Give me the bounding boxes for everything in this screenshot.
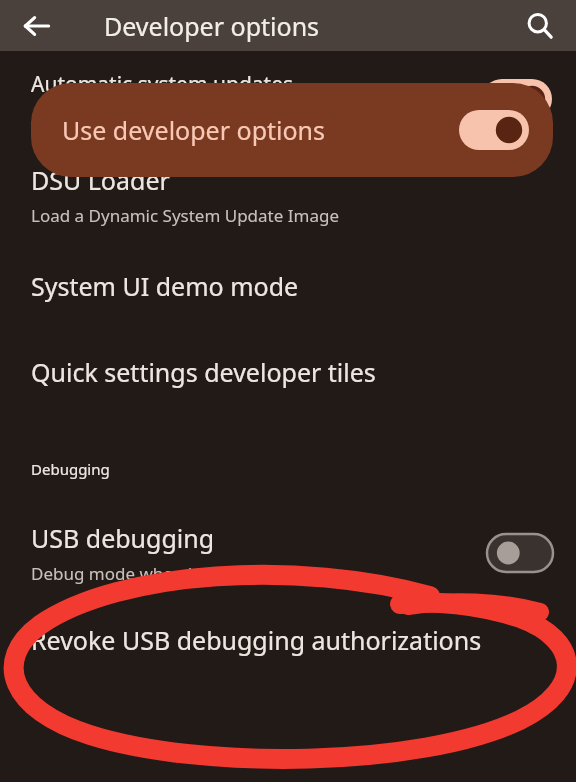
button[interactable]: Revoke USB debugging authorizations [0, 615, 576, 665]
staticText: Developer options [104, 9, 320, 43]
staticText: Apply updates when device restarts [31, 107, 298, 129]
button[interactable]: Automatic system updates [0, 51, 576, 147]
staticText: Quick settings developer tiles [31, 355, 376, 389]
staticText: Load a Dynamic System Update Image [31, 204, 339, 227]
button[interactable]: DSU Loader [0, 147, 576, 243]
staticText: Use developer options [62, 113, 326, 147]
staticText: DSU Loader [31, 163, 170, 197]
button[interactable]: Quick settings developer tiles [0, 329, 576, 415]
staticText: Automatic system updates [31, 70, 294, 99]
button[interactable]: Search [518, 4, 562, 48]
staticText: Debug mode when USB is connected [31, 562, 326, 585]
button[interactable]: Back [14, 4, 58, 48]
staticText: Revoke USB debugging authorizations [31, 623, 482, 657]
button[interactable]: Use developer options [31, 83, 553, 177]
staticText: Debugging [31, 459, 110, 479]
staticText: System UI demo mode [31, 269, 299, 303]
button[interactable]: System UI demo mode [0, 243, 576, 329]
button[interactable]: USB debugging [0, 507, 576, 599]
staticText: USB debugging [31, 521, 215, 555]
